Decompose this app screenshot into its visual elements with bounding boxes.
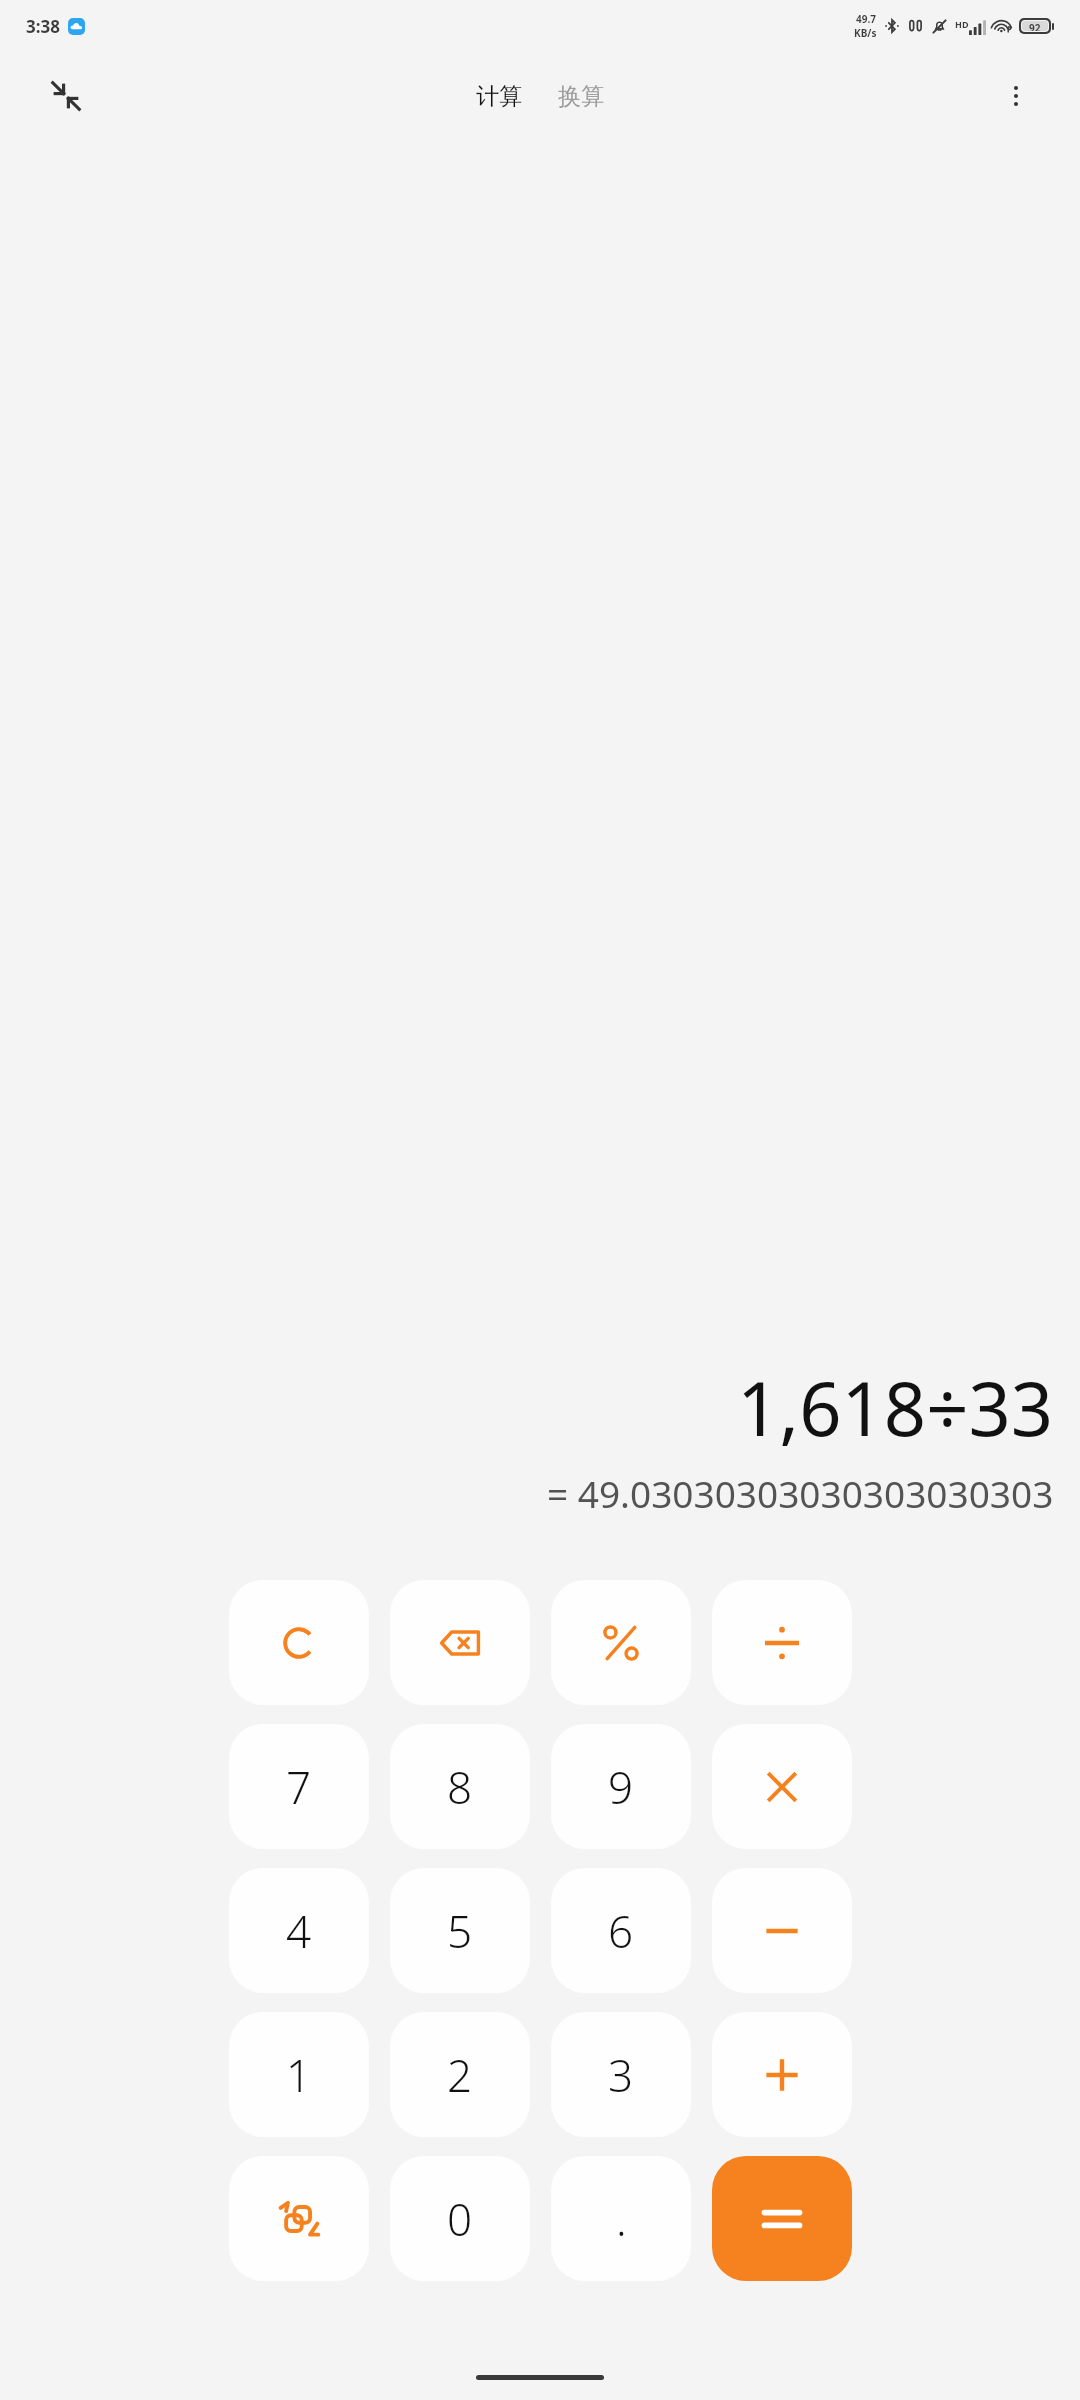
button[interactable]: Scientific: [229, 2156, 369, 2281]
staticText: = 49.03030303030303030303: [547, 1468, 1054, 1518]
button[interactable]: Collapse: [38, 68, 94, 124]
staticText: KB/s: [854, 26, 877, 40]
staticText: 5: [447, 1901, 473, 1961]
staticText: 8: [447, 1757, 473, 1817]
staticText: 49.7: [856, 12, 876, 26]
staticText: 4: [286, 1901, 312, 1961]
button[interactable]: Equals: [712, 2156, 852, 2281]
button[interactable]: 1: [229, 2012, 369, 2137]
button[interactable]: 7: [229, 1724, 369, 1849]
button[interactable]: More options: [988, 68, 1044, 124]
staticText: 3: [608, 2045, 634, 2105]
button[interactable]: 8: [390, 1724, 530, 1849]
staticText: 0: [447, 2189, 473, 2249]
staticText: 9: [608, 1757, 634, 1817]
staticText: 1,618÷33: [737, 1357, 1054, 1458]
staticText: HD: [955, 18, 969, 30]
staticText: 6: [608, 1901, 634, 1961]
button[interactable]: Clear: [229, 1580, 369, 1705]
button[interactable]: Minus: [712, 1868, 852, 1993]
button[interactable]: 计算: [466, 74, 532, 119]
staticText: 92: [1029, 21, 1041, 31]
button[interactable]: Backspace: [390, 1580, 530, 1705]
button[interactable]: 3: [551, 2012, 691, 2137]
button[interactable]: 5: [390, 1868, 530, 1993]
staticText: 换算: [558, 82, 604, 111]
staticText: 7: [286, 1757, 312, 1817]
button[interactable]: 2: [390, 2012, 530, 2137]
button[interactable]: 换算: [548, 74, 614, 119]
button[interactable]: Percent: [551, 1580, 691, 1705]
button[interactable]: 6: [551, 1868, 691, 1993]
button[interactable]: 0: [390, 2156, 530, 2281]
staticText: 计算: [476, 82, 522, 111]
button[interactable]: Plus: [712, 2012, 852, 2137]
button[interactable]: 4: [229, 1868, 369, 1993]
staticText: .: [616, 2189, 627, 2249]
button[interactable]: Multiply: [712, 1724, 852, 1849]
button[interactable]: .: [551, 2156, 691, 2281]
staticText: 2: [447, 2045, 473, 2105]
button[interactable]: 9: [551, 1724, 691, 1849]
staticText: 1: [286, 2045, 312, 2105]
button[interactable]: Divide: [712, 1580, 852, 1705]
staticText: 3:38: [26, 15, 60, 38]
